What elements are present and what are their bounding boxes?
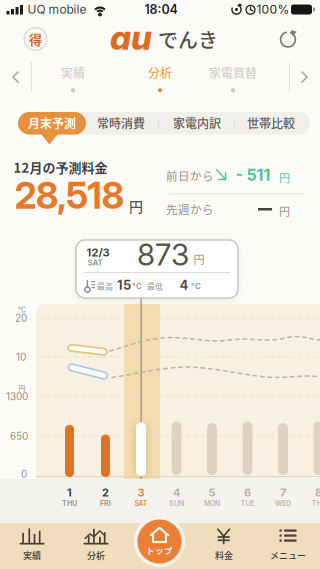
staticText: 7: [280, 486, 286, 499]
button[interactable]: 家電買替: [209, 64, 257, 92]
staticText: 12/3: [86, 246, 109, 259]
staticText: 2: [102, 486, 109, 499]
staticText: 実績: [61, 64, 85, 81]
button[interactable]: おトク情報: [18, 22, 52, 56]
staticText: - 511: [235, 165, 270, 185]
staticText: 5: [208, 486, 215, 499]
staticText: 先週から: [166, 201, 214, 217]
staticText: MON: [204, 499, 220, 508]
staticText: 18:04: [144, 2, 177, 17]
staticText: 3: [137, 486, 144, 499]
staticText: 20: [15, 312, 27, 324]
staticText: 常時消費: [97, 114, 145, 132]
staticText: THU: [62, 499, 77, 508]
staticText: 円: [18, 383, 25, 393]
staticText: 円: [279, 203, 290, 219]
staticText: 料金: [215, 548, 233, 561]
staticText: °C: [132, 281, 142, 291]
button[interactable]: 料金: [194, 525, 254, 565]
button[interactable]: 世帯比較: [236, 112, 306, 134]
staticText: トップ: [146, 544, 173, 556]
staticText: °C: [191, 281, 201, 291]
staticText: 1300: [6, 390, 28, 403]
staticText: 世帯比較: [247, 114, 295, 132]
staticText: メニュー: [270, 548, 306, 561]
staticText: 8: [315, 486, 320, 499]
staticText: 家電買替: [209, 64, 257, 81]
staticText: 10: [16, 351, 26, 363]
staticText: WED: [275, 499, 291, 508]
staticText: 分析: [148, 64, 172, 81]
staticText: 月末予測: [28, 114, 76, 132]
staticText: 1: [67, 486, 72, 499]
staticText: 4: [179, 277, 188, 293]
staticText: 家電内訳: [173, 114, 221, 132]
staticText: TUE: [240, 499, 254, 508]
button[interactable]: 家電内訳: [162, 112, 232, 134]
staticText: au: [110, 17, 152, 58]
staticText: FRI: [100, 499, 111, 508]
staticText: 円: [193, 251, 204, 267]
button[interactable]: 分析: [148, 64, 172, 92]
staticText: 円: [129, 196, 143, 216]
staticText: 最低: [147, 280, 163, 292]
staticText: °C: [18, 306, 26, 314]
staticText: 円: [279, 169, 290, 185]
staticText: SUN: [169, 499, 184, 508]
staticText: 650: [10, 430, 28, 442]
staticText: 0: [21, 468, 27, 480]
button[interactable]: トップ: [137, 519, 181, 563]
staticText: 得: [29, 30, 42, 48]
button[interactable]: 更新: [274, 24, 302, 52]
button[interactable]: 実績: [2, 525, 62, 565]
staticText: SAT: [87, 258, 102, 267]
staticText: 100%: [256, 2, 289, 17]
staticText: 15: [117, 277, 131, 293]
staticText: THU: [311, 499, 320, 508]
staticText: 28,518: [14, 173, 124, 218]
staticText: 4: [173, 486, 180, 499]
staticText: 6: [244, 486, 251, 499]
staticText: SAT: [134, 499, 147, 508]
staticText: UQ mobile: [27, 2, 86, 17]
staticText: 実績: [23, 548, 41, 561]
button[interactable]: メニュー: [256, 525, 320, 565]
staticText: 12月の予測料金: [13, 158, 107, 176]
button[interactable]: 月末予測: [18, 112, 86, 145]
button[interactable]: 常時消費: [86, 112, 156, 134]
staticText: 前日から: [166, 167, 214, 184]
staticText: でんき: [158, 24, 218, 53]
button[interactable]: 実績: [61, 64, 85, 92]
staticText: 最高: [97, 280, 113, 292]
staticText: 分析: [87, 548, 105, 561]
button[interactable]: 前のページ: [6, 64, 26, 90]
staticText: 873: [137, 236, 189, 273]
button[interactable]: 分析: [66, 525, 126, 565]
button[interactable]: 次のページ: [294, 64, 314, 90]
